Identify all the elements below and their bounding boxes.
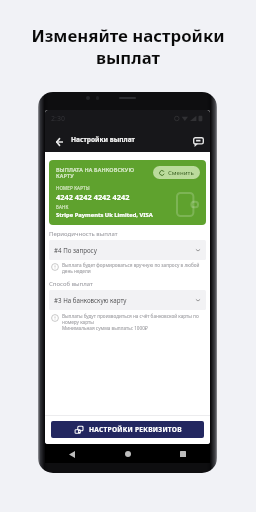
button[interactable]: Сменить <box>153 166 200 179</box>
button[interactable]: #3 На банковскую карту <box>49 290 206 310</box>
staticText: Выплата будет формироваться вручную по з… <box>62 262 204 274</box>
staticText: #4 По запросу <box>54 246 97 254</box>
staticText: Выплаты будут производиться на счёт банк… <box>62 313 204 331</box>
staticText: 2:30 <box>51 114 65 124</box>
staticText: Периодичность выплат <box>49 230 118 238</box>
staticText: Изменяйте настройки выплат <box>31 24 225 69</box>
staticText: НАСТРОЙКИ РЕКВИЗИТОВ <box>89 425 182 434</box>
button[interactable]: Recents <box>176 447 190 461</box>
button[interactable]: Back <box>65 447 79 461</box>
staticText: Настройки выплат <box>71 135 135 144</box>
staticText: Способ выплат <box>49 280 93 288</box>
staticText: Stripe Payments Uk Limited, VISA <box>56 211 153 219</box>
button[interactable]: Home <box>121 447 135 461</box>
button[interactable]: НАСТРОЙКИ РЕКВИЗИТОВ <box>51 421 204 438</box>
staticText: БАНК <box>56 204 69 210</box>
button[interactable]: Back <box>52 135 64 149</box>
staticText: ВЫПЛАТА НА БАНКОВСКУЮ КАРТУ <box>56 166 135 180</box>
button[interactable]: #4 По запросу <box>49 240 206 260</box>
staticText: #3 На банковскую карту <box>54 296 127 304</box>
staticText: НОМЕР КАРТЫ <box>56 185 90 191</box>
staticText: Сменить <box>168 169 194 177</box>
staticText: 4242 4242 4242 4242 <box>56 192 130 202</box>
button[interactable]: Chat <box>191 135 205 149</box>
